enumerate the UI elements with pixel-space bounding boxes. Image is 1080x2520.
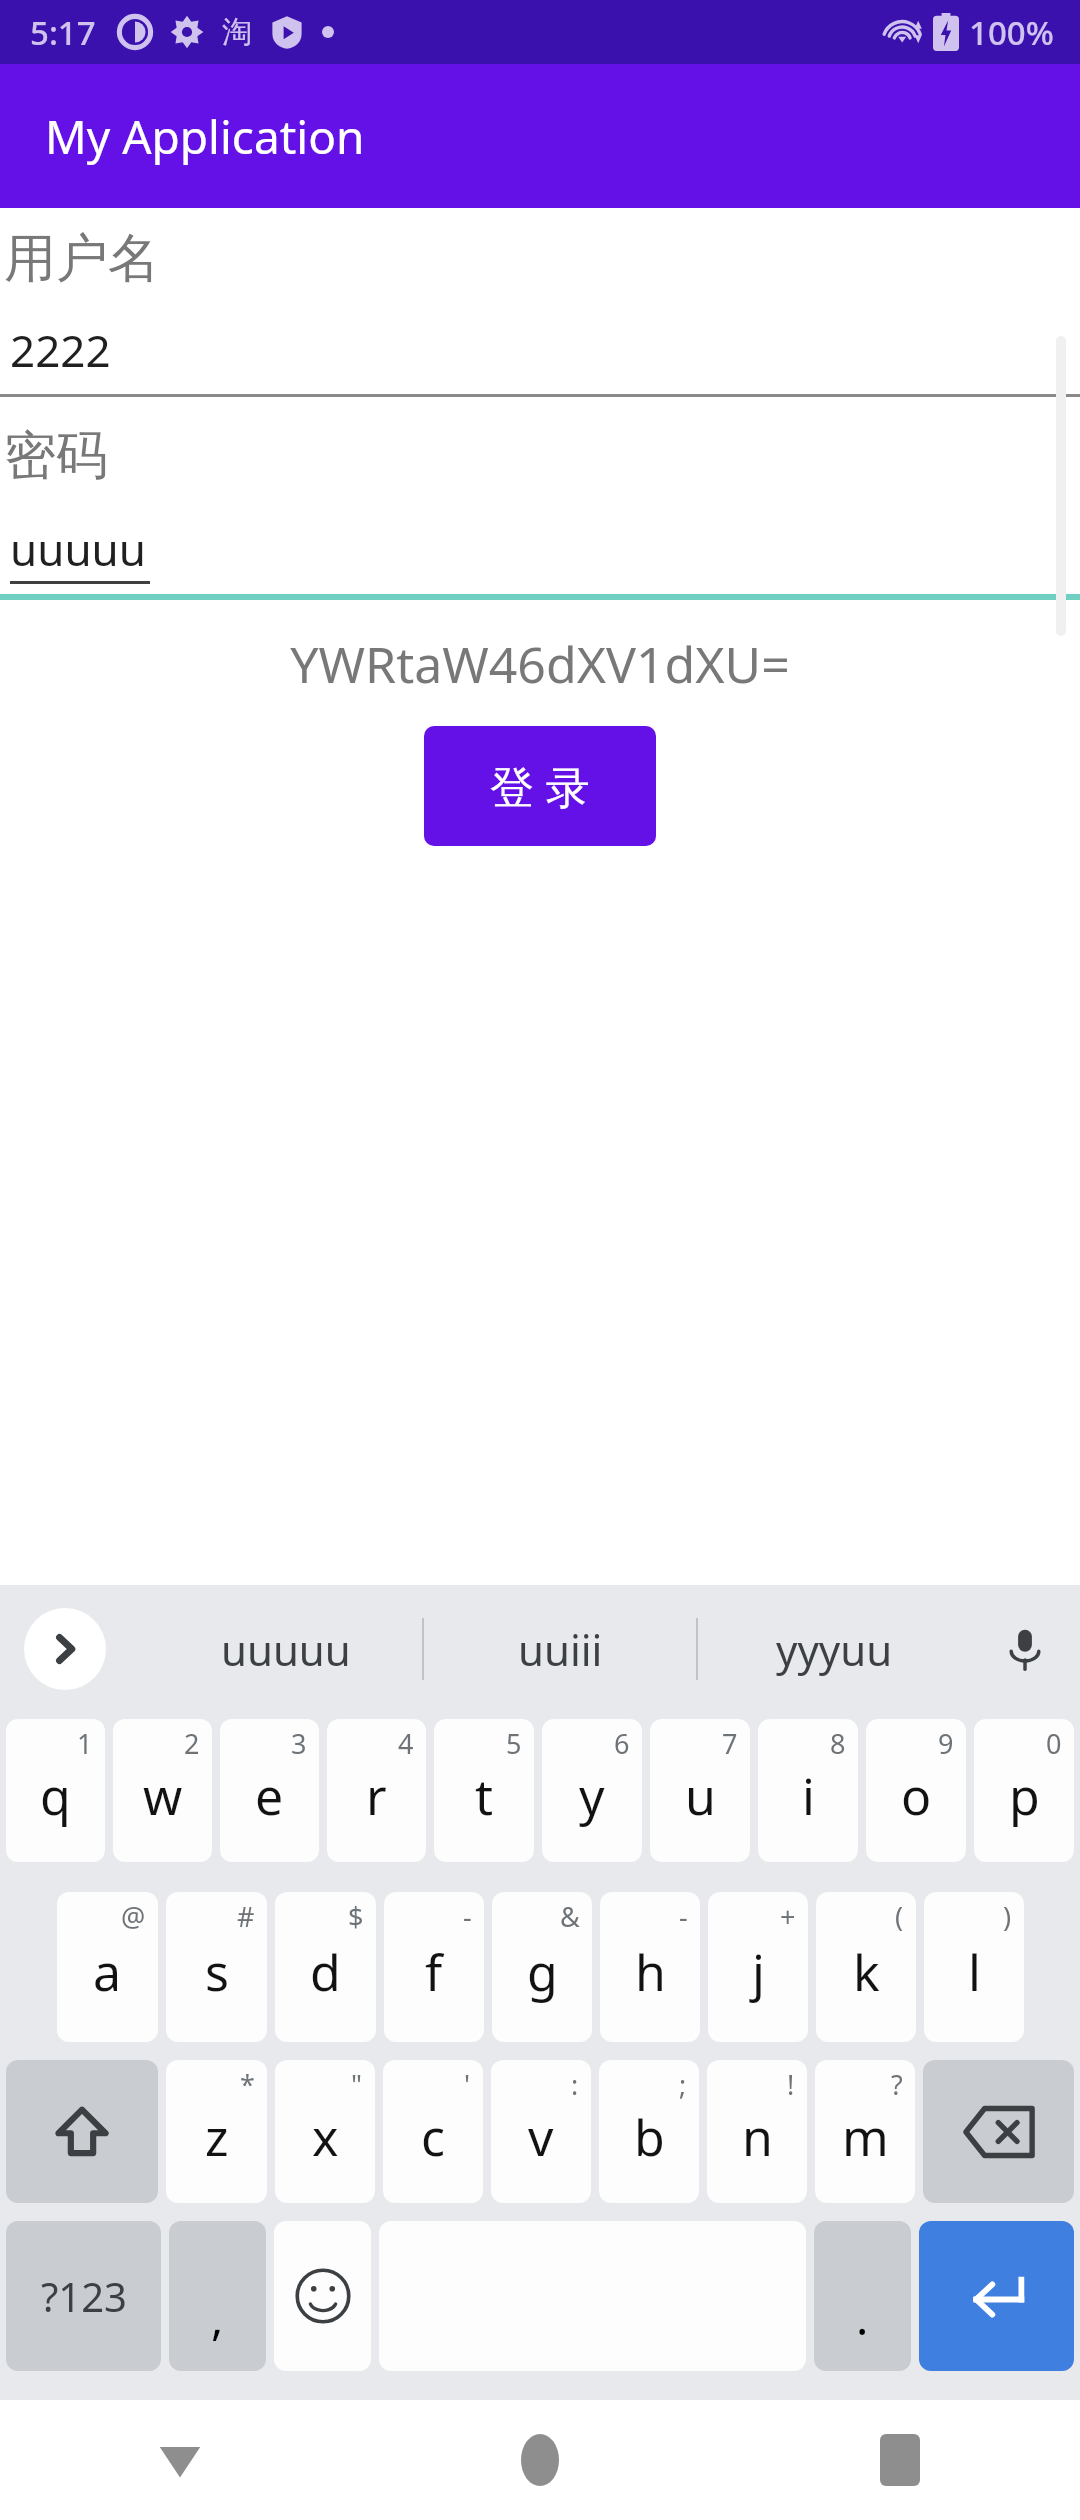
staticText: 100%: [969, 10, 1054, 55]
button[interactable]: *: [166, 2060, 267, 2203]
button[interactable]: ": [275, 2060, 375, 2203]
staticText: *: [240, 2066, 255, 2103]
button[interactable]: ): [924, 1892, 1024, 2042]
button[interactable]: +: [708, 1892, 808, 2042]
button[interactable]: My Application: [0, 64, 1080, 208]
staticText: ": [351, 2066, 363, 2103]
button[interactable]: Back: [0, 2400, 360, 2520]
button[interactable]: 登 录: [424, 726, 656, 846]
staticText: r: [366, 1762, 387, 1830]
staticText: 6: [614, 1725, 630, 1762]
button[interactable]: Emoji: [274, 2221, 371, 2371]
button[interactable]: 9: [866, 1719, 966, 1862]
button[interactable]: :: [491, 2060, 591, 2203]
staticText: p: [1009, 1762, 1040, 1830]
button[interactable]: .: [814, 2221, 911, 2371]
button[interactable]: 8: [758, 1719, 858, 1862]
button[interactable]: uuiii: [424, 1585, 696, 1713]
staticText: :: [571, 2066, 579, 2103]
button[interactable]: (: [816, 1892, 916, 2042]
staticText: s: [205, 1938, 229, 2006]
staticText: ;: [679, 2066, 687, 2103]
staticText: z: [205, 2103, 229, 2171]
button[interactable]: $: [275, 1892, 376, 2042]
staticText: t: [475, 1762, 494, 1830]
staticText: 8: [830, 1725, 846, 1762]
button[interactable]: 5: [434, 1719, 534, 1862]
staticText: e: [255, 1762, 284, 1830]
staticText: yyyuu: [776, 1621, 893, 1678]
button[interactable]: 2222: [0, 320, 1080, 397]
staticText: 2: [184, 1725, 200, 1762]
staticText: +: [780, 1898, 796, 1935]
staticText: -: [679, 1898, 688, 1935]
button[interactable]: Recents: [720, 2400, 1080, 2520]
staticText: ': [464, 2066, 471, 2103]
staticText: $: [348, 1898, 364, 1935]
staticText: c: [421, 2103, 445, 2171]
staticText: -: [463, 1898, 472, 1935]
staticText: k: [853, 1938, 880, 2006]
staticText: h: [635, 1938, 666, 2006]
button[interactable]: ': [383, 2060, 483, 2203]
staticText: u: [685, 1762, 716, 1830]
staticText: m: [842, 2103, 889, 2171]
button[interactable]: uuuuu: [150, 1585, 422, 1713]
staticText: v: [528, 2103, 554, 2171]
button[interactable]: 4: [327, 1719, 426, 1862]
staticText: l: [968, 1938, 981, 2006]
button[interactable]: Backspace: [923, 2060, 1074, 2203]
button[interactable]: Home: [360, 2400, 720, 2520]
staticText: 用户名: [4, 226, 160, 292]
staticText: uuuuu: [10, 519, 146, 579]
button[interactable]: !: [707, 2060, 807, 2203]
staticText: !: [787, 2066, 795, 2103]
button[interactable]: 6: [542, 1719, 642, 1862]
staticText: 5: [506, 1725, 522, 1762]
button[interactable]: 3: [220, 1719, 319, 1862]
staticText: 1: [77, 1725, 93, 1762]
staticText: ,: [211, 2286, 224, 2349]
staticText: ?: [891, 2066, 903, 2103]
staticText: ?123: [41, 2269, 127, 2323]
button[interactable]: -: [384, 1892, 484, 2042]
staticText: b: [634, 2103, 665, 2171]
button[interactable]: Enter: [919, 2221, 1074, 2371]
button[interactable]: ,: [169, 2221, 266, 2371]
button[interactable]: ;: [599, 2060, 699, 2203]
staticText: y: [579, 1762, 605, 1830]
staticText: 7: [722, 1725, 738, 1762]
staticText: d: [310, 1938, 341, 2006]
button[interactable]: &: [492, 1892, 592, 2042]
staticText: 5:17: [30, 10, 96, 55]
button[interactable]: Shift: [6, 2060, 158, 2203]
staticText: 登 录: [490, 756, 590, 816]
button[interactable]: yyyuu: [698, 1585, 970, 1713]
staticText: @: [121, 1898, 146, 1935]
staticText: .: [856, 2286, 869, 2349]
button[interactable]: ?123: [6, 2221, 161, 2371]
button[interactable]: @: [57, 1892, 158, 2042]
staticText: YWRtaW46dXV1dXU=: [0, 630, 1080, 698]
staticText: 0: [1046, 1725, 1062, 1762]
staticText: ): [1003, 1898, 1012, 1935]
button[interactable]: ?: [815, 2060, 915, 2203]
button[interactable]: 7: [650, 1719, 750, 1862]
staticText: uuuuu: [221, 1621, 351, 1678]
button[interactable]: Voice input: [970, 1585, 1080, 1713]
staticText: g: [527, 1938, 558, 2006]
staticText: x: [312, 2103, 339, 2171]
staticText: uuiii: [518, 1621, 603, 1678]
button[interactable]: -: [600, 1892, 700, 2042]
button[interactable]: #: [166, 1892, 267, 2042]
button[interactable]: More suggestions: [24, 1608, 106, 1690]
staticText: j: [752, 1938, 765, 2006]
staticText: 淘: [222, 13, 252, 51]
button[interactable]: uuuuu: [0, 519, 1080, 600]
staticText: q: [40, 1762, 71, 1830]
button[interactable]: 0: [974, 1719, 1074, 1862]
staticText: 4: [398, 1725, 414, 1762]
button[interactable]: 2: [113, 1719, 212, 1862]
button[interactable]: 1: [6, 1719, 105, 1862]
